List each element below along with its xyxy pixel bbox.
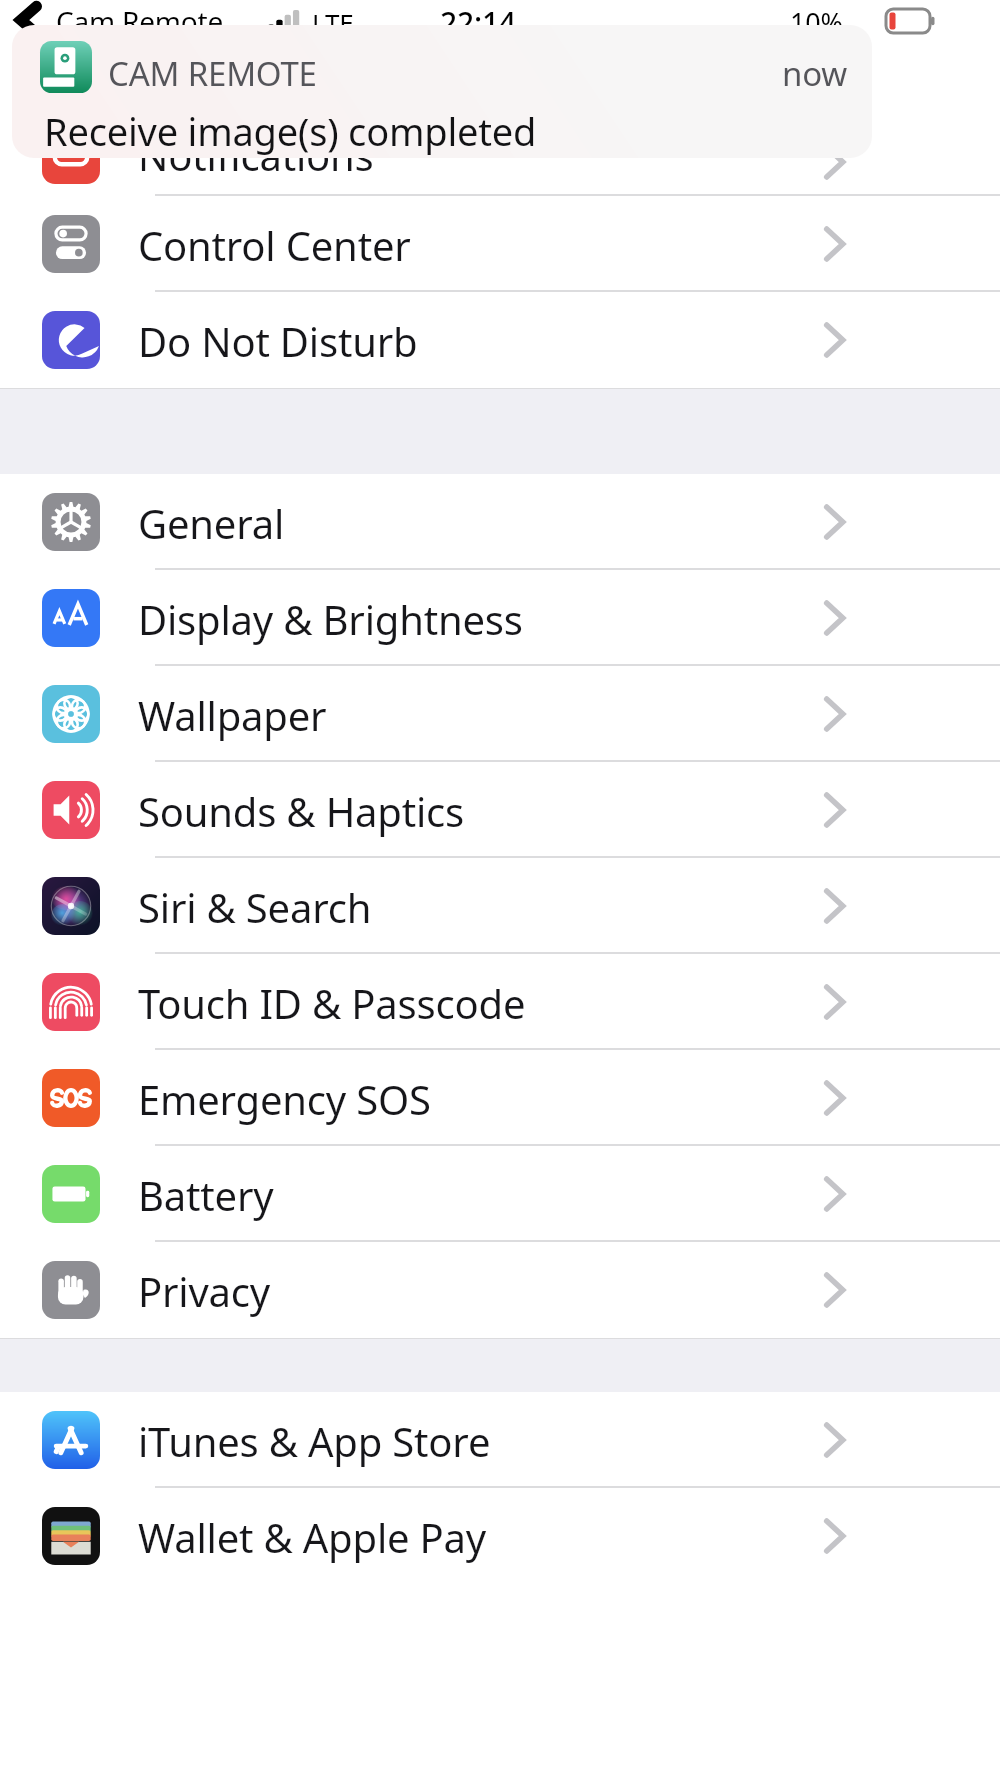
staticText: Display & Brightness <box>138 592 523 646</box>
other: Open <box>822 1418 848 1462</box>
button[interactable]: Touch ID & Passcode <box>0 954 1000 1050</box>
staticText: Notifications <box>138 128 374 182</box>
staticText: Emergency SOS <box>138 1072 431 1126</box>
other: Open <box>822 884 848 928</box>
staticText: Receive image(s) completed <box>44 105 537 157</box>
other: Open <box>822 1172 848 1216</box>
button[interactable]: Privacy <box>0 1242 1000 1338</box>
staticText: 22:14 <box>440 2 516 42</box>
staticText: Touch ID & Passcode <box>138 976 526 1030</box>
staticText: now <box>782 51 848 96</box>
staticText: Privacy <box>138 1264 270 1318</box>
staticText: CAM REMOTE <box>108 51 317 96</box>
button[interactable]: Wallpaper <box>0 666 1000 762</box>
staticText: iTunes & App Store <box>138 1414 491 1468</box>
staticText: Wallpaper <box>138 688 327 742</box>
staticText: Wallet & Apple Pay <box>138 1510 487 1564</box>
staticText: Battery <box>138 1168 274 1222</box>
staticText: Sounds & Haptics <box>138 784 465 838</box>
other: Open <box>822 1514 848 1558</box>
button[interactable]: Battery <box>0 1146 1000 1242</box>
button[interactable]: General <box>0 474 1000 570</box>
button[interactable]: CAM REMOTE notification <box>12 25 872 158</box>
staticText: Do Not Disturb <box>138 314 418 368</box>
button[interactable]: Wallet & Apple Pay <box>0 1488 1000 1584</box>
staticText: LTE <box>312 5 354 40</box>
button[interactable]: Siri & Search <box>0 858 1000 954</box>
other: Open <box>822 222 848 266</box>
button[interactable]: Display & Brightness <box>0 570 1000 666</box>
button[interactable]: Do Not Disturb <box>0 292 1000 388</box>
other: Open <box>822 1268 848 1312</box>
staticText: Cam Remote <box>56 2 224 40</box>
other: Open <box>822 318 848 362</box>
button[interactable]: iTunes & App Store <box>0 1392 1000 1488</box>
other: Open <box>822 500 848 544</box>
other: Open <box>822 692 848 736</box>
staticText: General <box>138 496 285 550</box>
staticText: 10% <box>790 4 843 41</box>
other: Open <box>822 140 848 184</box>
other: Open <box>822 980 848 1024</box>
staticText: Siri & Search <box>138 880 372 934</box>
button[interactable]: Notifications <box>0 0 1000 196</box>
button[interactable]: Emergency SOS <box>0 1050 1000 1146</box>
button[interactable]: Sounds & Haptics <box>0 762 1000 858</box>
staticText: Control Center <box>138 218 411 272</box>
other: Open <box>822 596 848 640</box>
button[interactable]: Control Center <box>0 196 1000 292</box>
other: Open <box>822 1076 848 1120</box>
other: Open <box>822 788 848 832</box>
